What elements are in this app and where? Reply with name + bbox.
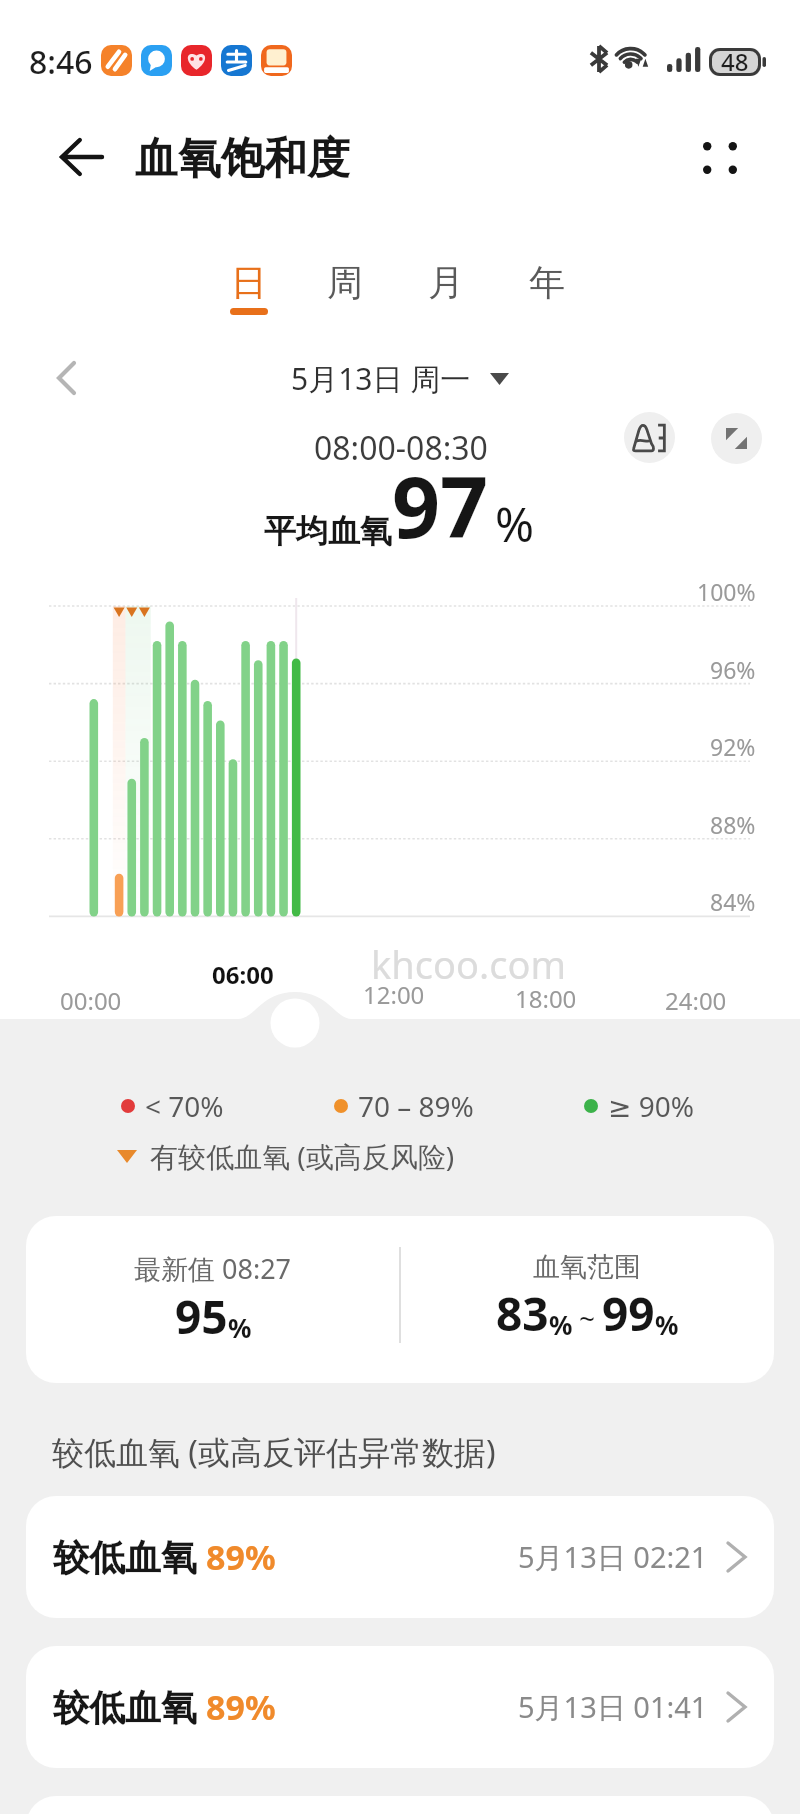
staticText: 较低血氧 bbox=[53, 1535, 197, 1580]
staticText: 8:46 bbox=[29, 40, 93, 84]
staticText: 周 bbox=[327, 260, 363, 305]
staticText: khcoo.com bbox=[371, 938, 566, 990]
staticText: 最新值 08:27 bbox=[134, 1250, 292, 1287]
button[interactable]: 最新值 08:27 bbox=[26, 1216, 774, 1383]
staticText: 18:00 bbox=[515, 982, 577, 1015]
staticText: 84% bbox=[710, 886, 756, 917]
staticText: 较低血氧 bbox=[53, 1685, 197, 1730]
button[interactable]: Annotate bbox=[624, 412, 675, 463]
staticText: 00:00 bbox=[60, 984, 122, 1017]
button[interactable]: More options bbox=[685, 123, 755, 193]
staticText: ~ bbox=[579, 1299, 596, 1337]
staticText: 较低血氧 (或高反评估异常数据) bbox=[52, 1430, 496, 1474]
staticText: 5月13日 02:21 bbox=[518, 1537, 708, 1577]
staticText: % bbox=[655, 1307, 679, 1342]
staticText: 92% bbox=[710, 731, 756, 762]
staticText: 24:00 bbox=[665, 984, 727, 1017]
button[interactable]: 70 – 89% bbox=[334, 1087, 474, 1125]
staticText: 97 bbox=[392, 448, 489, 562]
staticText: 89% bbox=[206, 1534, 276, 1580]
staticText: 89% bbox=[206, 1684, 276, 1730]
button[interactable]: Previous day bbox=[38, 350, 94, 406]
staticText: 99 bbox=[602, 1282, 655, 1345]
staticText: 平均血氧 bbox=[264, 511, 392, 551]
button[interactable]: 月 bbox=[404, 255, 488, 315]
staticText: 血氧饱和度 bbox=[135, 132, 350, 186]
staticText: 48 bbox=[721, 45, 749, 78]
staticText: 血氧范围 bbox=[533, 1250, 641, 1284]
staticText: % bbox=[495, 492, 535, 556]
button[interactable]: 日 bbox=[207, 255, 291, 315]
staticText: < 70% bbox=[145, 1087, 224, 1125]
staticText: 95 bbox=[175, 1285, 228, 1348]
button[interactable]: Back bbox=[45, 121, 117, 193]
staticText: 5月13日 周一 bbox=[291, 358, 471, 399]
staticText: % bbox=[228, 1310, 252, 1345]
staticText: 12:00 bbox=[363, 978, 425, 1011]
staticText: 年 bbox=[529, 260, 565, 305]
staticText: 96% bbox=[710, 654, 756, 685]
button[interactable]: 年 bbox=[505, 255, 589, 315]
button[interactable]: ≥ 90% bbox=[584, 1087, 695, 1125]
staticText: % bbox=[549, 1307, 573, 1342]
staticText: 06:00 bbox=[212, 958, 274, 991]
staticText: 有较低血氧 (或高反风险) bbox=[150, 1137, 455, 1175]
staticText: 70 – 89% bbox=[358, 1087, 474, 1125]
staticText: 88% bbox=[710, 809, 756, 840]
staticText: 08:00-08:30 bbox=[314, 426, 488, 470]
button[interactable]: 周 bbox=[303, 255, 387, 315]
button[interactable]: < 70% bbox=[121, 1087, 224, 1125]
staticText: 日 bbox=[231, 260, 267, 305]
button[interactable]: 较低血氧 bbox=[26, 1496, 774, 1618]
staticText: 83 bbox=[496, 1282, 549, 1345]
button[interactable]: Full screen bbox=[711, 413, 762, 464]
staticText: 月 bbox=[428, 260, 464, 305]
button[interactable]: 较低血氧 bbox=[26, 1646, 774, 1768]
staticText: 5月13日 01:41 bbox=[518, 1687, 708, 1727]
staticText: 100% bbox=[697, 576, 756, 607]
staticText: ≥ 90% bbox=[608, 1087, 695, 1125]
